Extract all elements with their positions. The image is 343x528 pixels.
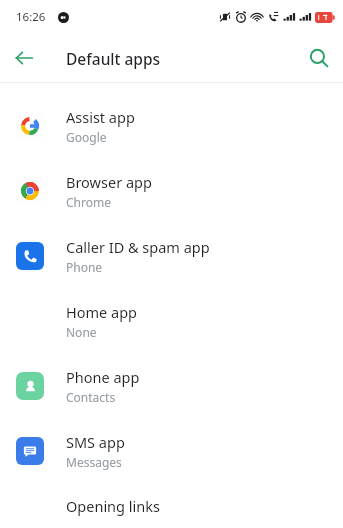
staticText: Chrome [66,194,111,210]
staticText: 16:26 [16,9,46,25]
staticText: Home app [66,302,137,322]
staticText: Google [66,129,107,145]
button[interactable]: Home app [0,288,343,353]
staticText: Caller ID & spam app [66,237,210,257]
staticText: Assist app [66,107,135,127]
staticText: None [66,324,97,340]
button[interactable]: Back [0,34,48,82]
button[interactable]: Caller ID & spam app [0,223,343,288]
staticText: Messages [66,454,122,470]
staticText: Phone app [66,367,140,387]
button[interactable]: Browser app [0,158,343,223]
staticText: Phone [66,259,103,275]
staticText: Opening links [66,496,160,516]
staticText: Browser app [66,172,152,192]
button[interactable]: Search [295,34,343,82]
button[interactable]: Assist app [0,93,343,158]
button[interactable]: Opening links [0,483,343,528]
staticText: Default apps [66,48,161,69]
button[interactable]: SMS app [0,418,343,483]
staticText: Contacts [66,389,116,405]
button[interactable]: Phone app [0,353,343,418]
staticText: SMS app [66,432,125,452]
